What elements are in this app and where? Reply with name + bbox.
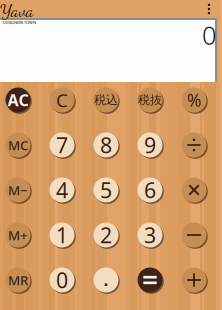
button[interactable]: 6	[128, 167, 172, 212]
button[interactable]: 9	[128, 122, 172, 167]
staticText: MC	[8, 136, 28, 154]
staticText: 1	[56, 221, 68, 249]
staticText: 税抜	[138, 93, 162, 107]
button[interactable]: 5	[84, 167, 128, 212]
button[interactable]: All clear	[0, 77, 40, 122]
button[interactable]: Memory minus	[0, 167, 40, 212]
button[interactable]: Memory recall	[0, 257, 40, 302]
button[interactable]: 0	[40, 257, 84, 302]
button[interactable]: 8	[84, 122, 128, 167]
staticText: 税込	[94, 93, 118, 107]
staticText: M−	[8, 181, 28, 199]
button[interactable]: Multiply	[172, 167, 216, 212]
staticText: M+	[8, 226, 28, 244]
button[interactable]: 3	[128, 212, 172, 257]
button[interactable]: 7	[40, 122, 84, 167]
button[interactable]: Clear	[40, 77, 84, 122]
button[interactable]: Memory clear	[0, 122, 40, 167]
staticText: %	[187, 88, 201, 111]
button[interactable]: More options	[201, 0, 217, 18]
staticText: C	[56, 88, 68, 112]
staticText: 3	[144, 221, 156, 249]
staticText: 6	[144, 176, 156, 204]
staticText: 0	[202, 18, 216, 52]
button[interactable]: Plus	[172, 257, 216, 302]
button[interactable]: Memory plus	[0, 212, 40, 257]
staticText: AC	[7, 89, 28, 111]
button[interactable]: Divide	[172, 122, 216, 167]
staticText: 7	[56, 131, 68, 159]
staticText: 0	[56, 266, 68, 294]
staticText: 2	[100, 221, 112, 249]
button[interactable]: Percent	[172, 77, 216, 122]
button[interactable]: Minus	[172, 212, 216, 257]
staticText: MR	[8, 271, 28, 289]
staticText: 5	[100, 176, 112, 204]
staticText: DESIGNERS TOWN	[3, 20, 36, 25]
button[interactable]: 2	[84, 212, 128, 257]
button[interactable]: Tax excluded	[128, 77, 172, 122]
button[interactable]: 1	[40, 212, 84, 257]
button[interactable]: Decimal point	[84, 257, 128, 302]
staticText: 4	[56, 176, 68, 204]
button[interactable]: 4	[40, 167, 84, 212]
button[interactable]: Equals	[128, 257, 172, 302]
staticText: 9	[144, 131, 156, 159]
staticText: Yava	[0, 0, 34, 21]
button[interactable]: Tax included	[84, 77, 128, 122]
staticText: 8	[100, 131, 112, 159]
